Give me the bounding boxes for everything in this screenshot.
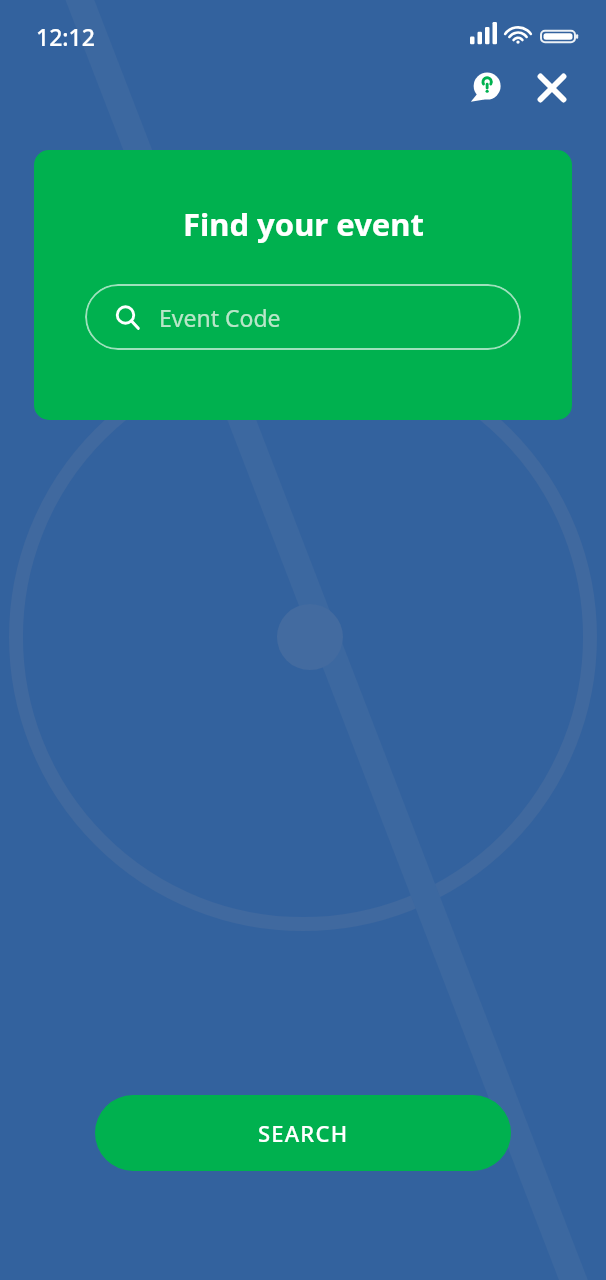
staticText: Event Code xyxy=(159,302,281,333)
button[interactable]: SEARCH xyxy=(95,1095,511,1171)
staticText: 12:12 xyxy=(36,21,95,52)
button[interactable]: Event Code xyxy=(85,284,521,350)
button[interactable]: Close xyxy=(524,60,580,116)
staticText: SEARCH xyxy=(258,1118,349,1148)
staticText: Find your event xyxy=(183,203,424,245)
button[interactable]: Help xyxy=(458,60,514,116)
